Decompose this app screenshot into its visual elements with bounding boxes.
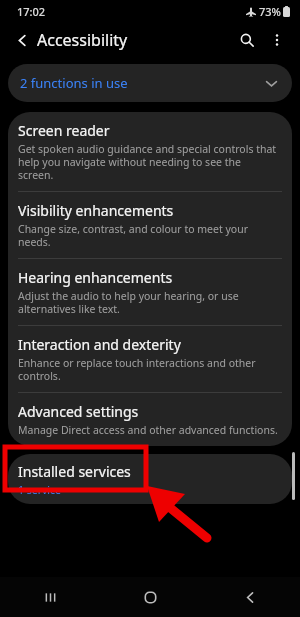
staticText: Screen reader — [18, 121, 110, 140]
staticText: Adjust the audio to help your hearing, o… — [18, 289, 278, 316]
button[interactable]: 2 functions in use — [8, 64, 292, 102]
button[interactable]: Search — [232, 25, 262, 55]
staticText: Hearing enhancements — [18, 268, 173, 287]
button[interactable]: Installed services — [8, 454, 292, 504]
button[interactable]: Screen reader — [8, 112, 292, 191]
staticText: Get spoken audio guidance and special co… — [18, 142, 278, 182]
button[interactable]: Back — [200, 577, 300, 617]
staticText: Accessibility — [37, 29, 128, 51]
staticText: Visibility enhancements — [18, 201, 174, 220]
staticText: 17:02 — [17, 4, 46, 19]
button[interactable]: Advanced settings — [8, 393, 292, 446]
button[interactable]: Home — [100, 577, 200, 617]
button[interactable]: Recent apps — [0, 577, 100, 617]
staticText: Advanced settings — [18, 402, 139, 421]
button[interactable]: Interaction and dexterity — [8, 326, 292, 392]
button[interactable]: More options — [262, 25, 292, 55]
staticText: Installed services — [18, 462, 131, 481]
staticText: 2 functions in use — [20, 74, 128, 92]
button[interactable]: Hearing enhancements — [8, 259, 292, 325]
staticText: 73% — [259, 4, 281, 19]
button[interactable]: Back — [9, 27, 35, 53]
staticText: 1 service — [18, 483, 62, 497]
button[interactable]: Visibility enhancements — [8, 192, 292, 258]
staticText: Enhance or replace touch interactions an… — [18, 356, 278, 383]
staticText: Interaction and dexterity — [18, 335, 181, 354]
staticText: Change size, contrast, and colour to mee… — [18, 222, 278, 249]
staticText: Manage Direct access and other advanced … — [18, 423, 278, 437]
